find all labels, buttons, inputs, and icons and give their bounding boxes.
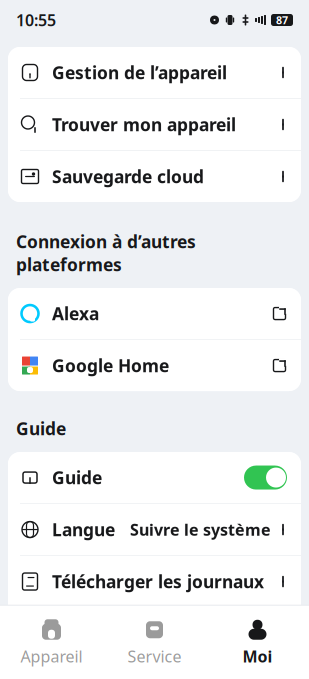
staticText: À propos de Mammotion [52,622,266,645]
button[interactable]: Moi [206,612,309,673]
staticText: Suivre le système [130,519,271,540]
staticText: Langue [52,518,115,541]
staticText: Trouver mon appareil [52,113,236,136]
button[interactable]: Service [103,612,206,673]
button[interactable]: Alexa [8,288,301,339]
staticText: Télécharger les journaux [52,570,264,593]
staticText: Service [127,646,181,667]
staticText: 10:55 [16,9,56,31]
staticText: Moi [242,646,272,667]
button[interactable]: Sauvegarde cloud [8,151,301,202]
staticText: 87 [276,13,288,27]
button[interactable]: Google Home [8,340,301,391]
button[interactable]: Télécharger les journaux [8,556,301,607]
staticText: Guide [52,466,102,489]
staticText: Appareil [20,646,82,667]
staticText: Connexion à d’autres plateformes [16,230,196,276]
staticText: Google Home [52,354,169,377]
staticText: Sauvegarde cloud [52,165,204,188]
button[interactable]: Guide [8,452,301,503]
button[interactable]: À propos de Mammotion [8,608,301,659]
button[interactable]: Gestion de l’appareil [8,47,301,98]
button[interactable]: Trouver mon appareil [8,99,301,150]
staticText: Guide [16,417,66,440]
button[interactable]: Langue [8,504,301,555]
button[interactable]: Appareil [0,612,103,673]
staticText: Alexa [52,302,99,325]
staticText: Gestion de l’appareil [52,61,227,84]
